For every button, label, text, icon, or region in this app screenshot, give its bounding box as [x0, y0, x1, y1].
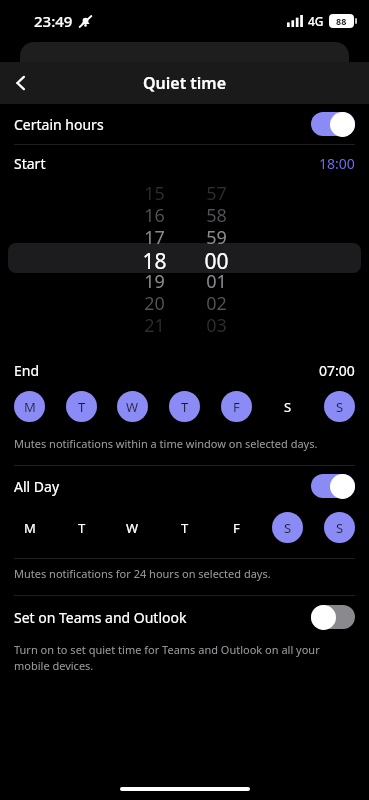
button[interactable]: S	[324, 391, 355, 422]
button[interactable]: S	[272, 391, 303, 422]
staticText: W	[126, 519, 139, 537]
staticText: Set on Teams and Outlook	[14, 608, 311, 627]
staticText: 88	[336, 15, 347, 27]
button[interactable]: T	[169, 391, 200, 422]
staticText: 18	[142, 247, 167, 269]
button[interactable]: M	[14, 512, 45, 543]
staticText: 58	[206, 203, 227, 225]
button[interactable]: F	[221, 512, 252, 543]
staticText: F	[233, 398, 240, 416]
button[interactable]: Set on Teams and Outlook	[0, 596, 369, 638]
button[interactable]: W	[117, 391, 148, 422]
button[interactable]: Back	[0, 62, 42, 104]
button[interactable]: T	[66, 512, 97, 543]
staticText: T	[181, 519, 189, 537]
staticText: S	[284, 519, 292, 537]
staticText: 20	[144, 291, 165, 313]
staticText: 23:49	[34, 11, 73, 31]
staticText: 03	[206, 313, 227, 335]
staticText: Mutes notifications for 24 hours on sele…	[14, 566, 271, 581]
staticText: 16	[144, 203, 165, 225]
staticText: Mutes notifications within a time window…	[14, 436, 318, 451]
staticText: 01	[206, 269, 227, 291]
staticText: 18:00	[319, 154, 355, 173]
staticText: Start	[14, 154, 46, 173]
staticText: Quiet time	[143, 72, 227, 94]
staticText: 57	[206, 181, 227, 203]
staticText: Turn on to set quiet time for Teams and …	[14, 642, 320, 673]
staticText: 02	[206, 291, 227, 313]
staticText: S	[336, 519, 344, 537]
button[interactable]: T	[169, 512, 200, 543]
staticText: F	[233, 519, 240, 537]
staticText: End	[14, 361, 40, 380]
staticText: 21	[144, 313, 165, 335]
button[interactable]: W	[117, 512, 148, 543]
staticText: 19	[144, 269, 165, 291]
button[interactable]: S	[272, 512, 303, 543]
staticText: W	[126, 398, 139, 416]
staticText: T	[181, 398, 189, 416]
staticText: T	[78, 519, 86, 537]
button[interactable]: S	[324, 512, 355, 543]
staticText: 07:00	[319, 361, 355, 380]
button[interactable]: End	[0, 357, 369, 383]
staticText: 4G	[308, 13, 324, 29]
staticText: 00	[204, 247, 229, 269]
staticText: S	[336, 398, 344, 416]
staticText: 59	[206, 225, 227, 247]
staticText: M	[24, 398, 36, 416]
button[interactable]: Start	[0, 145, 369, 181]
staticText: T	[78, 398, 86, 416]
button[interactable]: M	[14, 391, 45, 422]
button[interactable]: Certain hours	[0, 104, 369, 144]
staticText: 17	[144, 225, 165, 247]
button[interactable]: F	[221, 391, 252, 422]
staticText: S	[284, 398, 292, 416]
button[interactable]: All Day	[0, 466, 369, 506]
staticText: M	[24, 519, 36, 537]
staticText: Certain hours	[14, 115, 311, 134]
button[interactable]: T	[66, 391, 97, 422]
staticText: 15	[144, 181, 165, 203]
staticText: All Day	[14, 477, 311, 496]
